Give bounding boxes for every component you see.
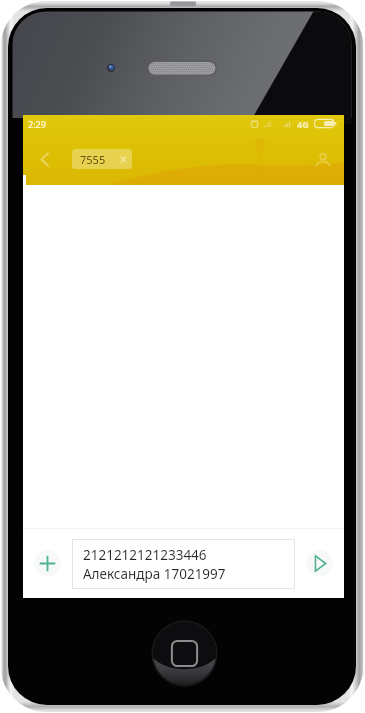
- staticText: 2:29: [28, 118, 46, 130]
- staticText: 2121212121233446: [83, 546, 207, 564]
- button[interactable]: 2121212121233446: [72, 539, 295, 589]
- staticText: 4G: [297, 118, 309, 130]
- button[interactable]: Add attachment: [34, 550, 61, 577]
- button[interactable]: Profile: [303, 139, 343, 179]
- button[interactable]: Back: [23, 138, 65, 180]
- button[interactable]: 7555: [72, 149, 132, 169]
- button[interactable]: Send: [306, 550, 333, 577]
- staticText: Александра 17021997: [83, 565, 226, 583]
- staticText: 7555: [80, 152, 106, 167]
